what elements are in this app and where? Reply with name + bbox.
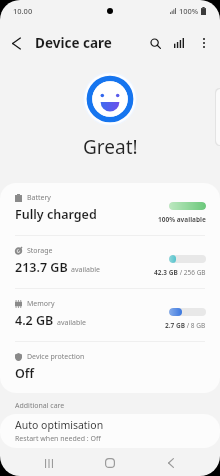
staticText: Device protection	[27, 352, 85, 362]
staticText: available	[57, 318, 87, 328]
staticText: 42.3 GB	[154, 268, 178, 277]
staticText: Battery	[27, 193, 51, 203]
staticText: Storage	[27, 246, 53, 256]
button[interactable]: Storage	[0, 236, 220, 288]
staticText: 4.2 GB	[15, 312, 54, 329]
button[interactable]: Recent apps	[35, 450, 63, 476]
button[interactable]: Battery	[0, 183, 220, 235]
button[interactable]: Auto optimisation	[0, 414, 220, 448]
staticText: Memory	[27, 299, 55, 309]
staticText: Great!	[83, 134, 138, 160]
staticText: Device care	[35, 34, 112, 52]
staticText: 10.00	[13, 6, 33, 16]
button[interactable]: Home	[96, 450, 124, 476]
button[interactable]: Usage statistics	[167, 27, 191, 59]
button[interactable]: Back	[157, 450, 185, 476]
staticText: 100%	[179, 6, 199, 16]
staticText: Auto optimisation	[15, 418, 104, 432]
button[interactable]: Memory	[0, 289, 220, 341]
staticText: Additional care	[15, 401, 65, 411]
button[interactable]: Device protection	[0, 342, 220, 393]
staticText: Fully charged	[15, 206, 97, 223]
button[interactable]: More options	[191, 27, 217, 59]
button[interactable]: Navigate up	[0, 27, 32, 59]
staticText: 2.7 GB	[165, 321, 185, 330]
staticText: 213.7 GB	[15, 259, 68, 276]
staticText: 100% available	[158, 215, 206, 224]
staticText: Restart when needed : Off	[15, 434, 101, 444]
staticText: available	[71, 265, 101, 275]
staticText: / 256 GB	[178, 268, 206, 277]
staticText: Off	[15, 365, 35, 382]
button[interactable]: Search	[143, 27, 167, 59]
staticText: / 8 GB	[185, 321, 206, 330]
